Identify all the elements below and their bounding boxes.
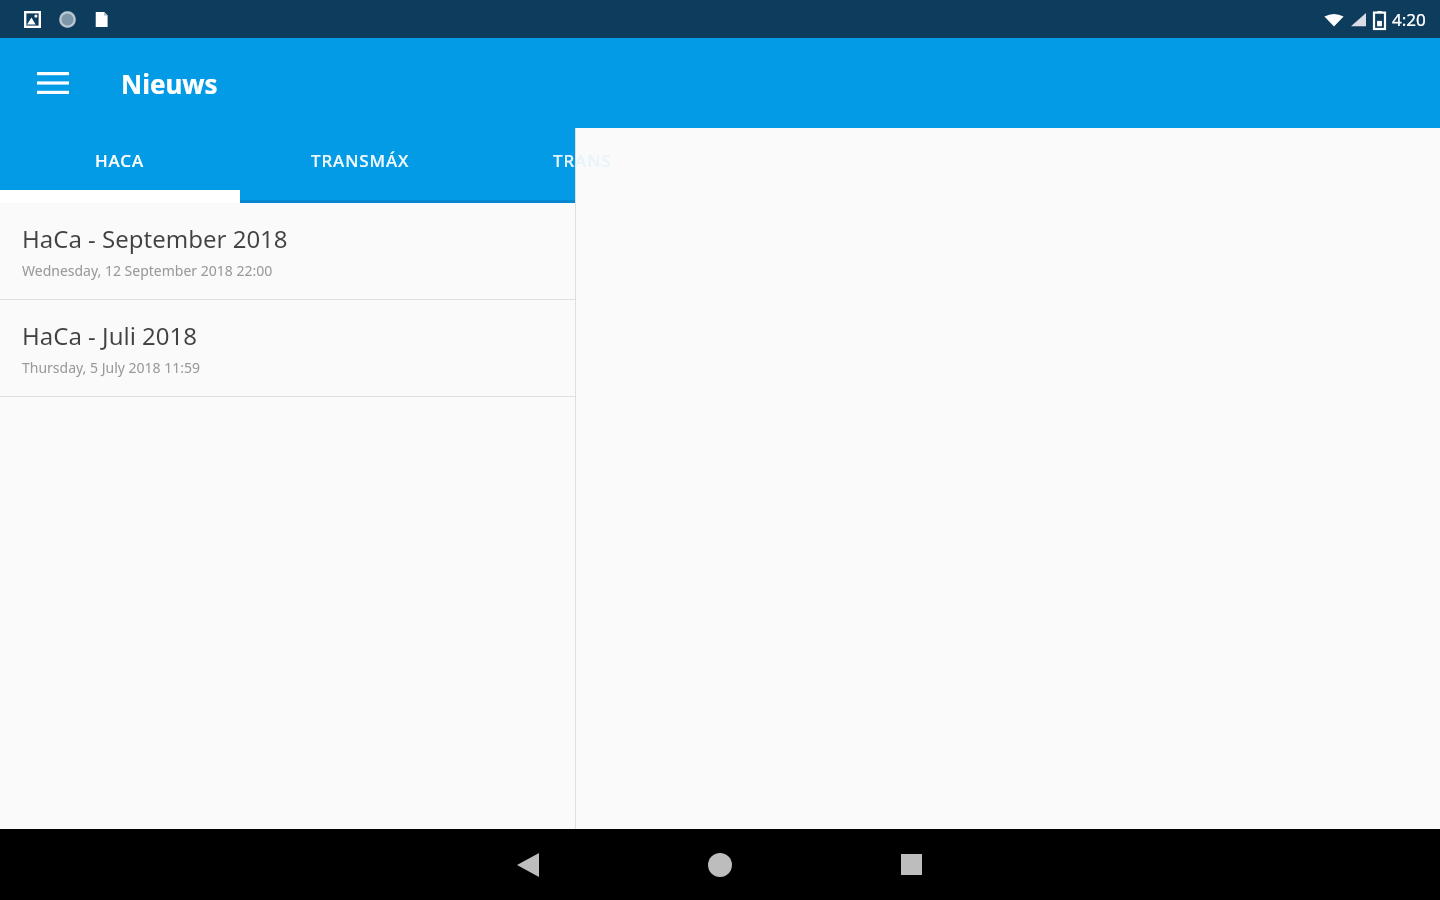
button[interactable]: TRANS <box>480 128 575 203</box>
staticText: Wednesday, 12 September 2018 22:00 <box>22 261 273 280</box>
button[interactable]: HaCa - September 2018 <box>0 203 575 299</box>
staticText: HACA <box>95 149 145 172</box>
staticText: HaCa - September 2018 <box>22 222 288 255</box>
button[interactable]: Recent apps <box>873 829 949 900</box>
button[interactable]: Open navigation menu <box>20 50 86 116</box>
button[interactable]: HACA <box>0 128 240 203</box>
staticText: HaCa - Juli 2018 <box>22 319 198 352</box>
staticText: 4:20 <box>1392 8 1426 31</box>
staticText: TRANSMÁX <box>311 149 410 172</box>
staticText: TRANS <box>553 149 612 172</box>
staticText: Nieuws <box>121 66 218 101</box>
button[interactable]: HaCa - Juli 2018 <box>0 300 575 396</box>
staticText: Thursday, 5 July 2018 11:59 <box>22 358 200 377</box>
button[interactable]: Back <box>490 829 566 900</box>
button[interactable]: TRANSMÁX <box>240 128 480 203</box>
button[interactable]: Home <box>682 829 758 900</box>
